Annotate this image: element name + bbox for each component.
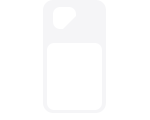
button[interactable]: Messages bbox=[53, 7, 76, 29]
